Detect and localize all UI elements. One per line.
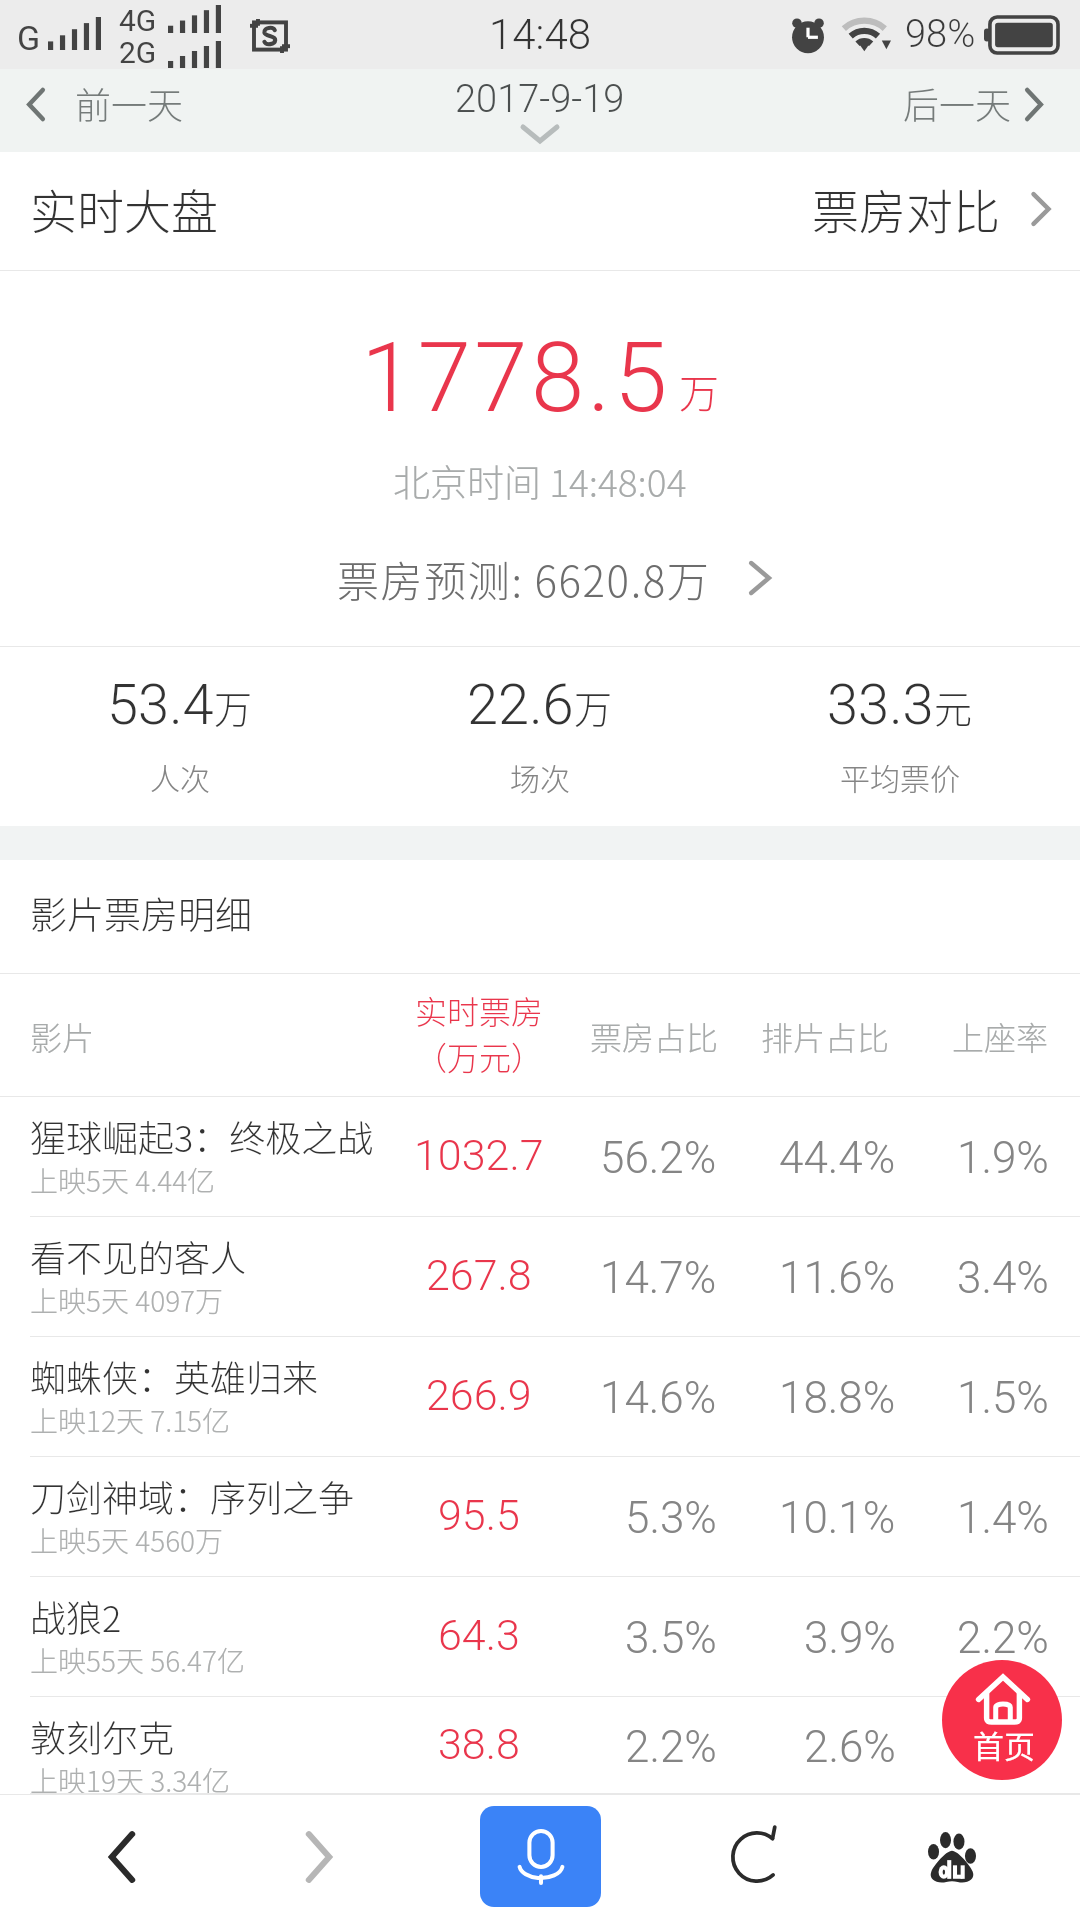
staticText: （万元）	[415, 1033, 544, 1079]
staticText: 11.6%	[779, 1252, 896, 1304]
staticText: 1.4%	[957, 1492, 1049, 1544]
staticText: 3.9%	[804, 1612, 896, 1664]
staticText: 看不见的客人	[30, 1230, 247, 1282]
staticText: 票房预测: 6620.8万	[337, 548, 711, 609]
staticText: 排片占比	[761, 1013, 890, 1059]
button[interactable]: Forward	[259, 1794, 379, 1920]
button[interactable]: 蜘蛛侠：英雄归来	[0, 1337, 1080, 1457]
button[interactable]: 实时大盘	[0, 152, 1080, 271]
staticText: 万	[574, 679, 613, 734]
staticText: 上座率	[952, 1013, 1049, 1059]
staticText: 53.4	[107, 672, 214, 738]
staticText: 10.1%	[779, 1492, 896, 1544]
staticText: 平均票价	[840, 755, 960, 798]
staticText: 2G	[119, 35, 157, 70]
staticText: 上映19天 3.34亿	[30, 1760, 231, 1794]
staticText: 元	[934, 679, 973, 734]
staticText: 首页	[973, 1722, 1035, 1767]
staticText: 1032.7	[414, 1130, 544, 1180]
staticText: 战狼2	[30, 1590, 122, 1642]
staticText: 1.0%	[957, 1721, 1049, 1773]
button[interactable]: Refresh	[697, 1794, 817, 1920]
staticText: 14.6%	[600, 1372, 717, 1424]
staticText: 猩球崛起3：终极之战	[30, 1110, 374, 1162]
staticText: 2.6%	[804, 1721, 896, 1773]
button[interactable]: 前一天	[10, 69, 200, 152]
staticText: 蜘蛛侠：英雄归来	[30, 1350, 319, 1402]
staticText: 22.6	[467, 672, 574, 738]
staticText: 万	[679, 362, 719, 420]
staticText: 上映5天 4097万	[30, 1280, 224, 1321]
staticText: 上映5天 4.44亿	[30, 1160, 216, 1201]
button[interactable]: 后一天	[880, 69, 1070, 152]
staticText: 实时票房	[415, 987, 544, 1033]
staticText: 3.4%	[957, 1252, 1049, 1304]
button[interactable]: 看不见的客人	[0, 1217, 1080, 1337]
staticText: 人次	[150, 755, 210, 798]
staticText: 万	[214, 679, 253, 734]
staticText: 4G	[119, 3, 157, 38]
staticText: 44.4%	[779, 1132, 896, 1184]
staticText: 2017-9-19	[455, 77, 625, 122]
staticText: 56.2%	[600, 1132, 717, 1184]
staticText: 33.3	[827, 672, 934, 738]
button[interactable]: 敦刻尔克	[0, 1697, 1080, 1794]
button[interactable]: Baidu	[892, 1794, 1012, 1920]
staticText: 刀剑神域：序列之争	[30, 1470, 355, 1522]
staticText: 3.5%	[625, 1612, 717, 1664]
staticText: 前一天	[75, 77, 184, 129]
staticText: 上映5天 4560万	[30, 1520, 224, 1561]
button[interactable]: 战狼2	[0, 1577, 1080, 1697]
staticText: 敦刻尔克	[30, 1710, 175, 1762]
staticText: 影片	[30, 1013, 95, 1059]
staticText: 实时大盘	[30, 174, 218, 242]
staticText: 5.3%	[625, 1492, 717, 1544]
staticText: 14:48	[489, 10, 592, 59]
staticText: 场次	[510, 755, 570, 798]
staticText: 266.9	[426, 1370, 532, 1420]
staticText: 1.5%	[957, 1372, 1049, 1424]
staticText: 2.2%	[625, 1721, 717, 1773]
staticText: 票房占比	[590, 1013, 719, 1059]
staticText: 影片票房明细	[30, 886, 252, 940]
staticText: 64.3	[438, 1610, 520, 1660]
button[interactable]: Voice search	[480, 1806, 601, 1907]
button[interactable]: 刀剑神域：序列之争	[0, 1457, 1080, 1577]
staticText: 14.7%	[600, 1252, 717, 1304]
staticText: 1.9%	[957, 1132, 1049, 1184]
staticText: 2.2%	[957, 1612, 1049, 1664]
button[interactable]: 票房预测: 6620.8万	[320, 546, 780, 610]
staticText: 38.8	[438, 1719, 520, 1769]
staticText: 98%	[905, 12, 976, 57]
button[interactable]: 首页	[942, 1660, 1062, 1780]
staticText: 1778.5	[361, 322, 671, 435]
button[interactable]: 猩球崛起3：终极之战	[0, 1097, 1080, 1217]
staticText: 北京时间 14:48:04	[393, 454, 687, 508]
staticText: 后一天	[903, 77, 1012, 129]
staticText: 上映12天 7.15亿	[30, 1400, 231, 1441]
button[interactable]: Back	[62, 1794, 182, 1920]
staticText: 票房对比	[812, 174, 1000, 242]
staticText: 267.8	[426, 1250, 532, 1300]
staticText: 18.8%	[779, 1372, 896, 1424]
staticText: 95.5	[438, 1490, 520, 1540]
staticText: 上映55天 56.47亿	[30, 1640, 246, 1681]
staticText: G	[17, 18, 41, 58]
